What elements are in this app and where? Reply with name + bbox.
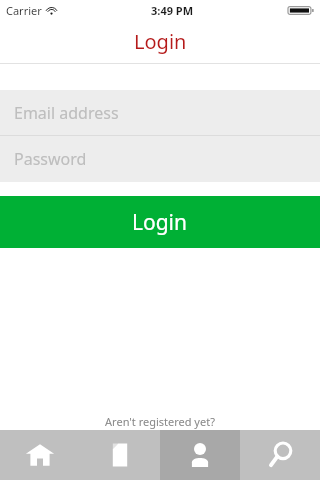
staticText: Login bbox=[134, 28, 187, 55]
button[interactable]: Documents bbox=[80, 430, 160, 480]
button[interactable]: Profile bbox=[160, 430, 240, 480]
button[interactable]: Password bbox=[0, 136, 320, 182]
staticText: 3:49 PM bbox=[151, 3, 194, 18]
button[interactable]: Home bbox=[0, 430, 80, 480]
button[interactable]: Email address bbox=[0, 90, 320, 135]
staticText: Login bbox=[132, 208, 188, 237]
staticText: Password bbox=[14, 148, 87, 170]
button[interactable]: Aren't registered yet? bbox=[0, 414, 320, 430]
button[interactable]: Search bbox=[240, 430, 320, 480]
staticText: Email address bbox=[14, 102, 119, 124]
button[interactable]: Login bbox=[0, 196, 320, 248]
staticText: Aren't registered yet? bbox=[105, 414, 215, 429]
staticText: Carrier bbox=[6, 3, 42, 18]
